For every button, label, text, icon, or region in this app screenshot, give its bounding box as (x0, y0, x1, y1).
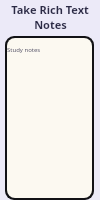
staticText: Study notes (7, 46, 41, 54)
staticText: Notes (34, 17, 67, 32)
staticText: Take Rich Text (11, 2, 89, 17)
